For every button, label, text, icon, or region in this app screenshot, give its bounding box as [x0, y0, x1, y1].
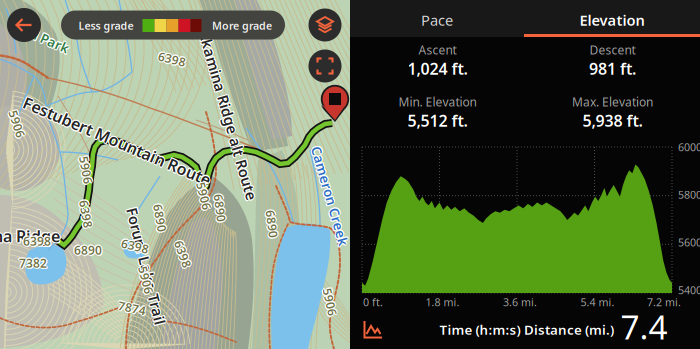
staticText: 5906 — [72, 161, 100, 177]
staticText: al Park — [27, 31, 72, 49]
staticText: Cameron Creek — [277, 187, 380, 205]
staticText: ina Ridge — [0, 224, 60, 245]
staticText: 6890 — [145, 209, 173, 225]
staticText: 5906 — [73, 162, 101, 178]
staticText: 6398 — [24, 233, 52, 249]
button[interactable]: Map layers — [308, 8, 341, 41]
staticText: 7874 — [117, 299, 145, 315]
staticText: 6890 — [147, 211, 175, 227]
staticText: Akamina Ridge alt Route — [140, 106, 317, 126]
staticText: 5906 — [133, 272, 161, 288]
staticText: 6398 — [158, 52, 186, 68]
staticText: Pace — [421, 10, 453, 30]
staticText: 5906 — [3, 117, 31, 133]
staticText: 7.4 — [620, 304, 667, 349]
staticText: 5906 — [2, 115, 30, 131]
staticText: 5906 — [2, 116, 30, 132]
staticText: 5906 — [316, 295, 344, 311]
staticText: 5906 — [190, 188, 218, 204]
staticText: Forum Lake Trail — [86, 255, 206, 275]
staticText: 7874 — [119, 300, 147, 316]
staticText: Max. Elevation — [572, 94, 653, 110]
staticText: 5906 — [190, 189, 218, 205]
staticText: al Park — [24, 31, 69, 49]
staticText: Forum Lake Trail — [86, 256, 206, 276]
staticText: 0 ft. — [363, 295, 383, 309]
staticText: 7874 — [119, 301, 147, 317]
staticText: Less grade — [78, 18, 133, 33]
staticText: Forum Lake Trail — [87, 256, 207, 276]
button[interactable]: Back — [7, 8, 41, 42]
staticText: 6398 — [71, 205, 99, 221]
staticText: 6398 — [73, 207, 101, 223]
staticText: ina Ridge — [0, 227, 60, 248]
staticText: Cameron Creek — [277, 186, 380, 204]
staticText: Akamina Ridge alt Route — [139, 106, 316, 126]
button[interactable]: Chart type — [357, 314, 389, 345]
staticText: 6398 — [158, 50, 186, 66]
staticText: 5906 — [132, 273, 160, 289]
staticText: 5906 — [191, 188, 219, 204]
button[interactable]: Pace — [350, 0, 524, 37]
staticText: Akamina Ridge alt Route — [139, 104, 316, 124]
staticText: Elevation — [579, 10, 644, 30]
staticText: al Park — [25, 32, 70, 50]
staticText: 1.8 mi. — [425, 295, 459, 309]
staticText: 6890 — [147, 210, 175, 226]
staticText: 5.4 mi. — [580, 295, 614, 309]
staticText: 6890 — [206, 199, 234, 215]
staticText: 6890 — [146, 210, 174, 226]
button[interactable]: Zoom to fit — [308, 49, 341, 82]
staticText: Cameron Creek — [278, 187, 381, 205]
staticText: Akamina Ridge alt Route — [138, 105, 315, 125]
staticText: 6398 — [72, 205, 100, 221]
staticText: 6398 — [168, 245, 196, 261]
staticText: 6398 — [120, 238, 148, 254]
staticText: Akamina Ridge alt Route — [141, 105, 318, 125]
staticText: 6890 — [258, 217, 286, 233]
staticText: 5906 — [133, 273, 161, 289]
staticText: Distance (mi.) — [524, 321, 614, 338]
staticText: 5906 — [315, 293, 343, 309]
staticText: 6890 — [146, 211, 174, 227]
staticText: 6398 — [22, 232, 50, 248]
staticText: 6398 — [72, 207, 100, 223]
staticText: 6398 — [158, 51, 186, 67]
staticText: 6890 — [74, 241, 102, 257]
staticText: 3.6 mi. — [503, 295, 537, 309]
staticText: 6890 — [257, 216, 285, 232]
staticText: 6890 — [259, 217, 287, 233]
staticText: 5,938 ft. — [582, 110, 642, 131]
staticText: 6890 — [257, 215, 285, 231]
staticText: 5906 — [4, 117, 32, 133]
staticText: 6890 — [73, 242, 101, 258]
staticText: 6398 — [157, 50, 185, 66]
staticText: 7382 — [19, 255, 47, 271]
staticText: 7874 — [118, 299, 146, 315]
staticText: 5906 — [191, 189, 219, 205]
staticText: 6398 — [120, 237, 148, 253]
staticText: 6398 — [169, 247, 197, 263]
staticText: 6398 — [159, 52, 187, 68]
staticText: 6890 — [205, 200, 233, 216]
staticText: Cameron Creek — [278, 186, 381, 204]
staticText: Cameron Creek — [280, 187, 383, 205]
staticText: Festubert Mountain Route — [15, 129, 217, 151]
staticText: 6398 — [71, 206, 99, 222]
staticText: 5906 — [317, 294, 345, 310]
staticText: 5906 — [189, 187, 217, 203]
staticText: More grade — [212, 18, 272, 33]
staticText: 6890 — [74, 242, 102, 258]
staticText: 6398 — [24, 234, 52, 250]
button[interactable]: Elevation — [524, 0, 700, 37]
staticText: 7382 — [18, 254, 46, 270]
staticText: Festubert Mountain Route — [17, 130, 219, 152]
staticText: 7382 — [20, 256, 48, 272]
staticText: 6398 — [169, 246, 197, 262]
staticText: 6398 — [23, 234, 51, 250]
staticText: Cameron Creek — [278, 188, 381, 206]
staticText: 6398 — [157, 51, 185, 67]
staticText: ina Ridge — [0, 225, 59, 247]
staticText: ina Ridge — [0, 224, 59, 246]
staticText: 5906 — [3, 115, 31, 131]
